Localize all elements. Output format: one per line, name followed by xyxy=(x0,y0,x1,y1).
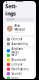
button[interactable]: Notifications xyxy=(5,67,34,71)
staticText: Settings xyxy=(5,3,17,17)
staticText: Alex Morgan xyxy=(14,24,25,31)
staticText: Notifications xyxy=(11,67,28,71)
staticText: Cellular xyxy=(11,63,22,66)
staticText: Search xyxy=(7,18,15,21)
staticText: Sounds xyxy=(11,72,21,75)
button[interactable]: Sounds xyxy=(5,71,34,76)
staticText: Airplane Mode xyxy=(11,47,23,54)
button[interactable]: General xyxy=(5,37,34,42)
button[interactable]: Wi-Fi xyxy=(5,53,34,58)
staticText: Focus xyxy=(11,76,18,80)
staticText: Bluetooth xyxy=(11,58,26,62)
button[interactable]: Alex Morgan xyxy=(5,22,34,35)
staticText: General xyxy=(11,37,22,41)
button[interactable]: Accessibility xyxy=(5,42,34,46)
staticText: Apple Account xyxy=(14,31,24,33)
staticText: Wi-Fi xyxy=(11,53,17,57)
button[interactable]: Focus xyxy=(5,76,34,80)
button[interactable]: Cellular xyxy=(5,62,34,67)
button[interactable]: Airplane Mode xyxy=(5,48,34,53)
button[interactable]: Bluetooth xyxy=(5,58,34,62)
staticText: 9:41 xyxy=(5,0,7,7)
staticText: Accessibility xyxy=(11,42,27,46)
